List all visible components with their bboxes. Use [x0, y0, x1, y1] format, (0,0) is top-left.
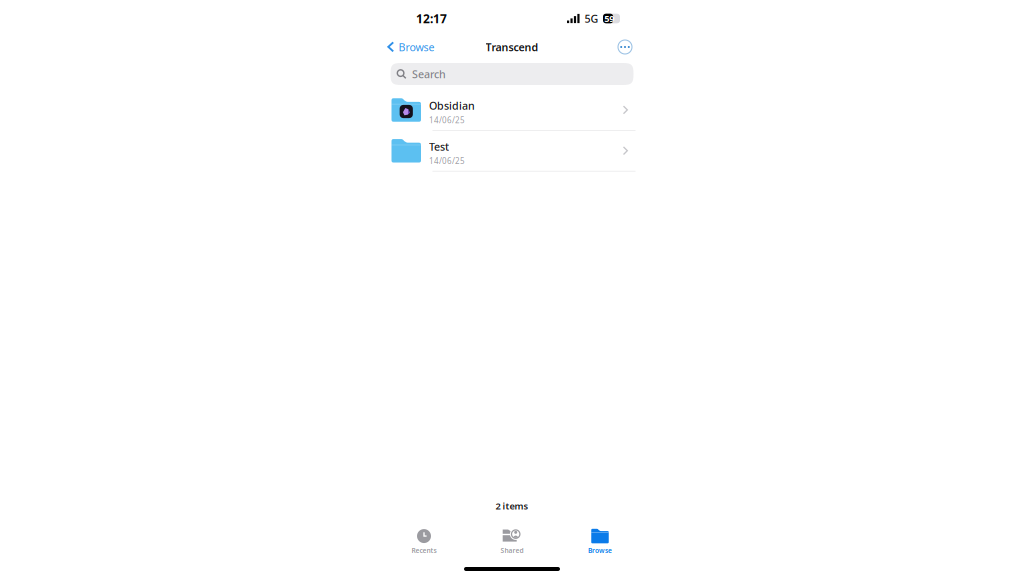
button[interactable]: Search [390, 63, 633, 85]
button[interactable]: Browse [386, 36, 440, 58]
staticText: 59 [604, 12, 614, 25]
staticText: 12:17 [416, 10, 447, 26]
button[interactable]: Obsidian [388, 90, 635, 130]
staticText: Recents [411, 546, 436, 555]
button[interactable]: More options [616, 38, 634, 56]
staticText: 14/06/25 [429, 115, 465, 125]
staticText: Shared [500, 546, 523, 555]
staticText: Browse [588, 546, 612, 555]
staticText: Obsidian [429, 99, 475, 113]
staticText: Search [412, 67, 446, 81]
staticText: 14/06/25 [429, 156, 465, 166]
button[interactable]: Browse [556, 528, 644, 553]
staticText: Test [429, 139, 449, 154]
button[interactable]: Recents [380, 528, 468, 553]
staticText: 5G [584, 11, 598, 26]
button[interactable]: Test [388, 131, 635, 171]
staticText: Transcend [485, 40, 538, 54]
button[interactable]: Shared [468, 528, 556, 553]
staticText: 2 items [495, 500, 528, 512]
staticText: Browse [398, 40, 434, 54]
